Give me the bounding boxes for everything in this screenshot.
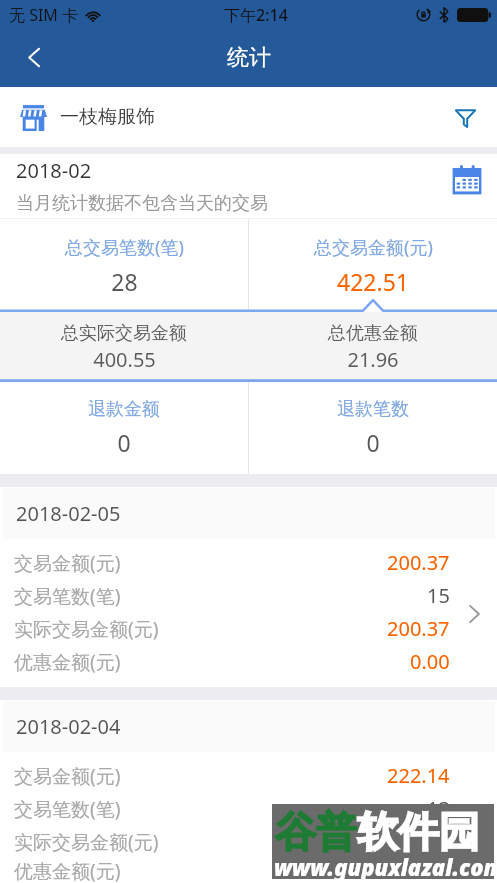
staticText: 28 <box>111 266 138 297</box>
staticText: 2018-02-04 <box>16 713 121 740</box>
staticText: 交易笔数(笔) <box>14 796 121 822</box>
button[interactable]: 2018-02-05 <box>0 487 497 687</box>
staticText: 0 <box>366 427 380 458</box>
staticText: 21.96 <box>347 346 399 373</box>
staticText: 2018-02 <box>16 157 92 184</box>
staticText: 总实际交易金额 <box>61 322 187 345</box>
button[interactable]: Select month <box>444 157 490 203</box>
staticText: 2018-02-05 <box>16 500 121 527</box>
staticText: 退款金额 <box>88 398 160 421</box>
button[interactable]: 总交易笔数(笔) <box>0 219 248 312</box>
staticText: 统计 <box>227 44 271 72</box>
staticText: www.gupuxlazal.com <box>274 852 496 882</box>
staticText: 无 SIM 卡 <box>9 4 79 26</box>
staticText: 优惠金额(元) <box>14 858 121 883</box>
staticText: 400.55 <box>93 346 156 373</box>
button[interactable]: 退款笔数 <box>249 382 497 474</box>
staticText: 交易金额(元) <box>14 763 121 789</box>
staticText: 13 <box>427 795 450 822</box>
staticText: 实际交易金额(元) <box>14 829 159 855</box>
button[interactable]: 2018-02-04 <box>0 700 497 883</box>
button[interactable]: 总交易金额(元) <box>249 219 497 312</box>
staticText: 0.00 <box>410 648 450 675</box>
staticText: 200.37 <box>387 615 450 642</box>
staticText: 422.51 <box>337 266 409 297</box>
staticText: 当月统计数据不包含当天的交易 <box>16 192 268 215</box>
staticText: 交易金额(元) <box>14 550 121 576</box>
staticText: 15 <box>427 582 450 609</box>
staticText: 一枝梅服饰 <box>60 105 155 129</box>
staticText: 退款笔数 <box>337 398 409 421</box>
staticText: 总交易笔数(笔) <box>65 235 184 260</box>
staticText: 下午2:14 <box>224 4 288 26</box>
staticText: 0 <box>117 427 131 458</box>
staticText: 21.06 <box>398 858 450 883</box>
staticText: 实际交易金额(元) <box>14 616 159 642</box>
staticText: 总优惠金额 <box>328 322 418 345</box>
staticText: 200.37 <box>387 549 450 576</box>
button[interactable]: Filter <box>443 95 487 139</box>
staticText: 优惠金额(元) <box>14 649 121 675</box>
staticText: 谷普 <box>275 807 357 859</box>
staticText: 222.14 <box>387 762 450 789</box>
staticText: 222.14 <box>387 828 450 855</box>
button[interactable]: 退款金额 <box>0 382 248 474</box>
staticText: 总交易金额(元) <box>314 235 433 260</box>
staticText: 交易笔数(笔) <box>14 583 121 609</box>
button[interactable]: Back <box>10 33 58 81</box>
staticText: 软件园 <box>357 807 480 859</box>
